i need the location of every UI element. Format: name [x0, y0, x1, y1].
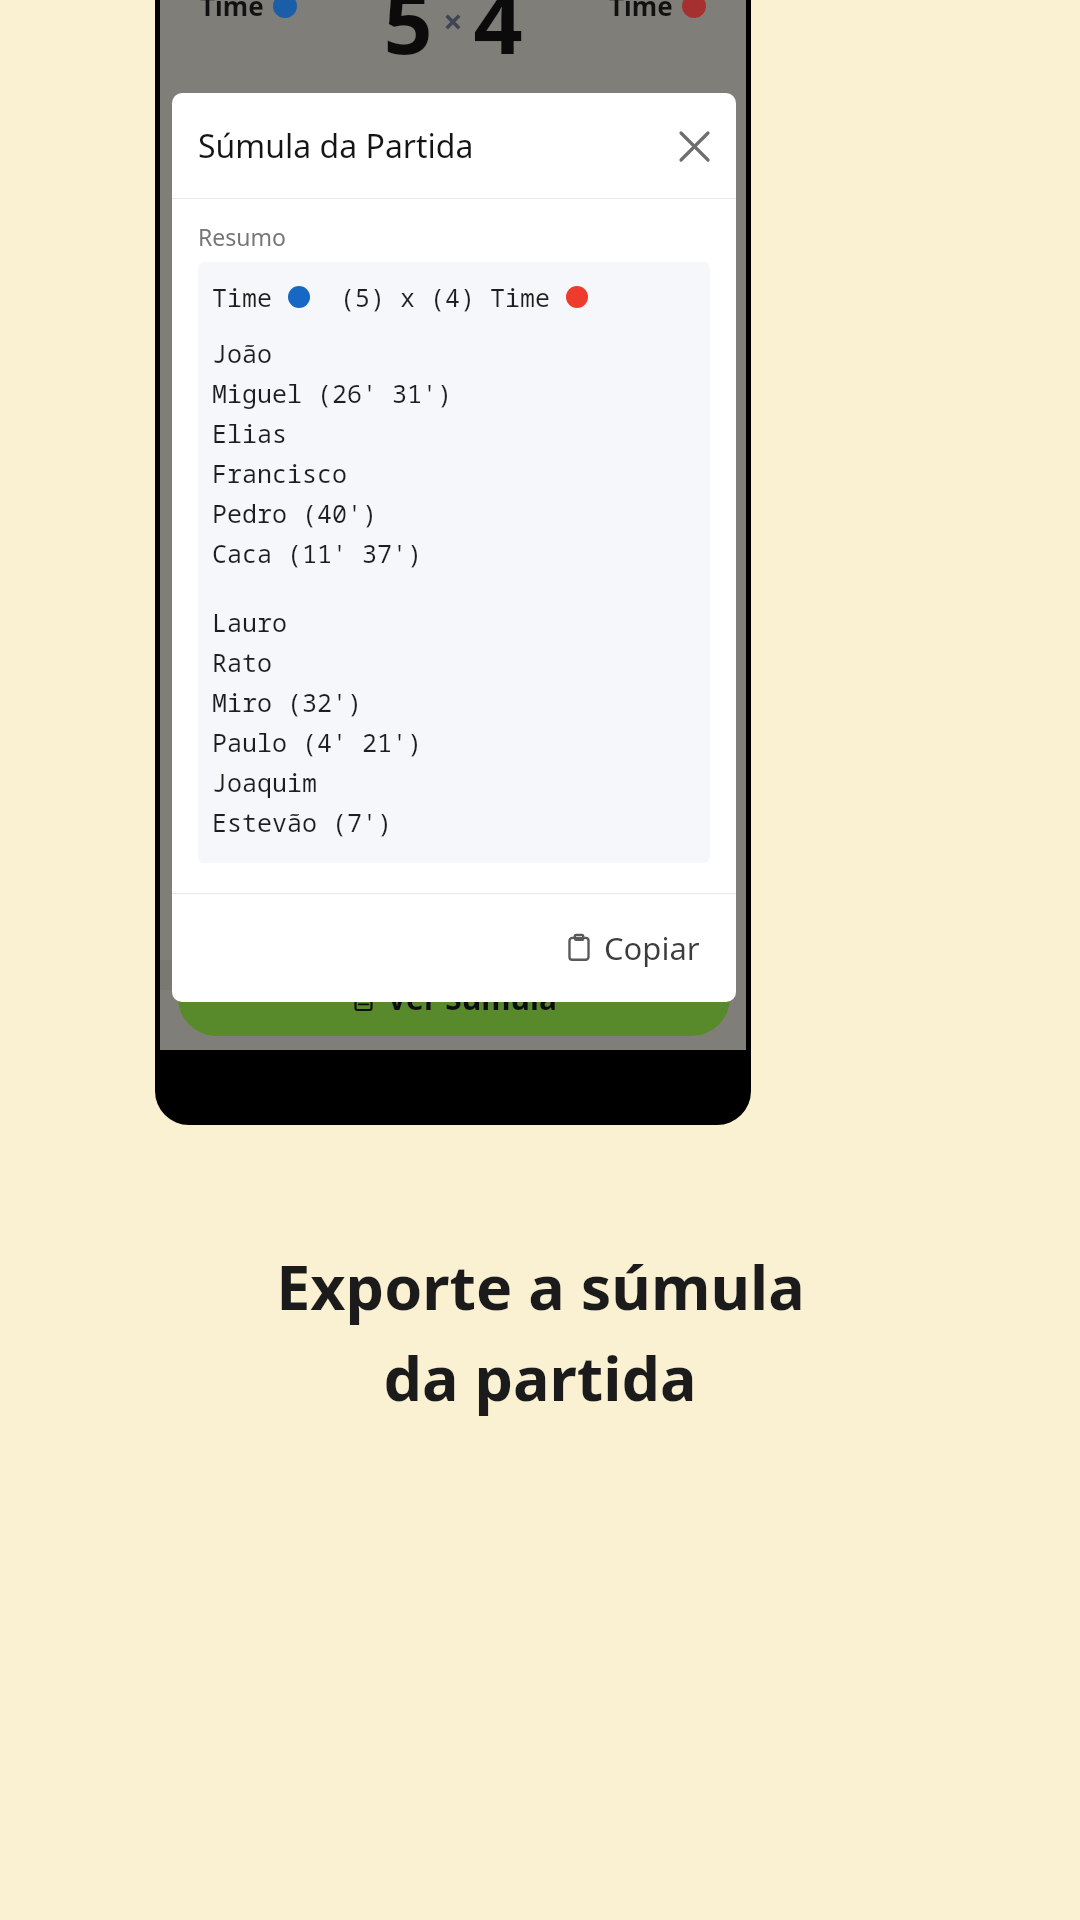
staticText: × — [443, 0, 463, 44]
staticText: Time — [200, 0, 264, 23]
button[interactable]: Ver Súmula — [178, 960, 730, 1036]
staticText: 5 — [383, 0, 433, 79]
staticText: Francisco — [212, 456, 348, 490]
staticText: Lauro — [212, 605, 288, 639]
staticText: Time — [212, 280, 288, 314]
staticText: Time — [609, 0, 673, 23]
staticText: Exporte a súmula — [276, 1245, 805, 1328]
staticText: Joaquim — [212, 765, 318, 799]
staticText: Súmula da Partida — [198, 124, 474, 168]
button[interactable]: Fechar — [670, 122, 718, 170]
staticText: Elias — [212, 416, 288, 450]
staticText: da partida — [383, 1336, 697, 1419]
staticText: Miguel (26' 31') — [212, 376, 453, 410]
staticText: Estevão (7') — [212, 805, 393, 839]
staticText: Miro (32') — [212, 685, 363, 719]
staticText: Ver Súmula — [387, 978, 557, 1019]
staticText: João — [212, 336, 273, 370]
button[interactable]: Copiar — [555, 919, 710, 977]
staticText: 4 — [473, 0, 523, 79]
staticText: Pedro (40') — [212, 496, 378, 530]
staticText: Paulo (4' 21') — [212, 725, 423, 759]
staticText: Copiar — [604, 927, 700, 969]
staticText: Resumo — [198, 221, 286, 252]
staticText: (assist: Joaquim) — [529, 859, 720, 893]
staticText: Caca (11' 37') — [212, 536, 423, 570]
staticText: Rato — [212, 645, 273, 679]
staticText: (5) x (4) Time — [310, 280, 566, 314]
